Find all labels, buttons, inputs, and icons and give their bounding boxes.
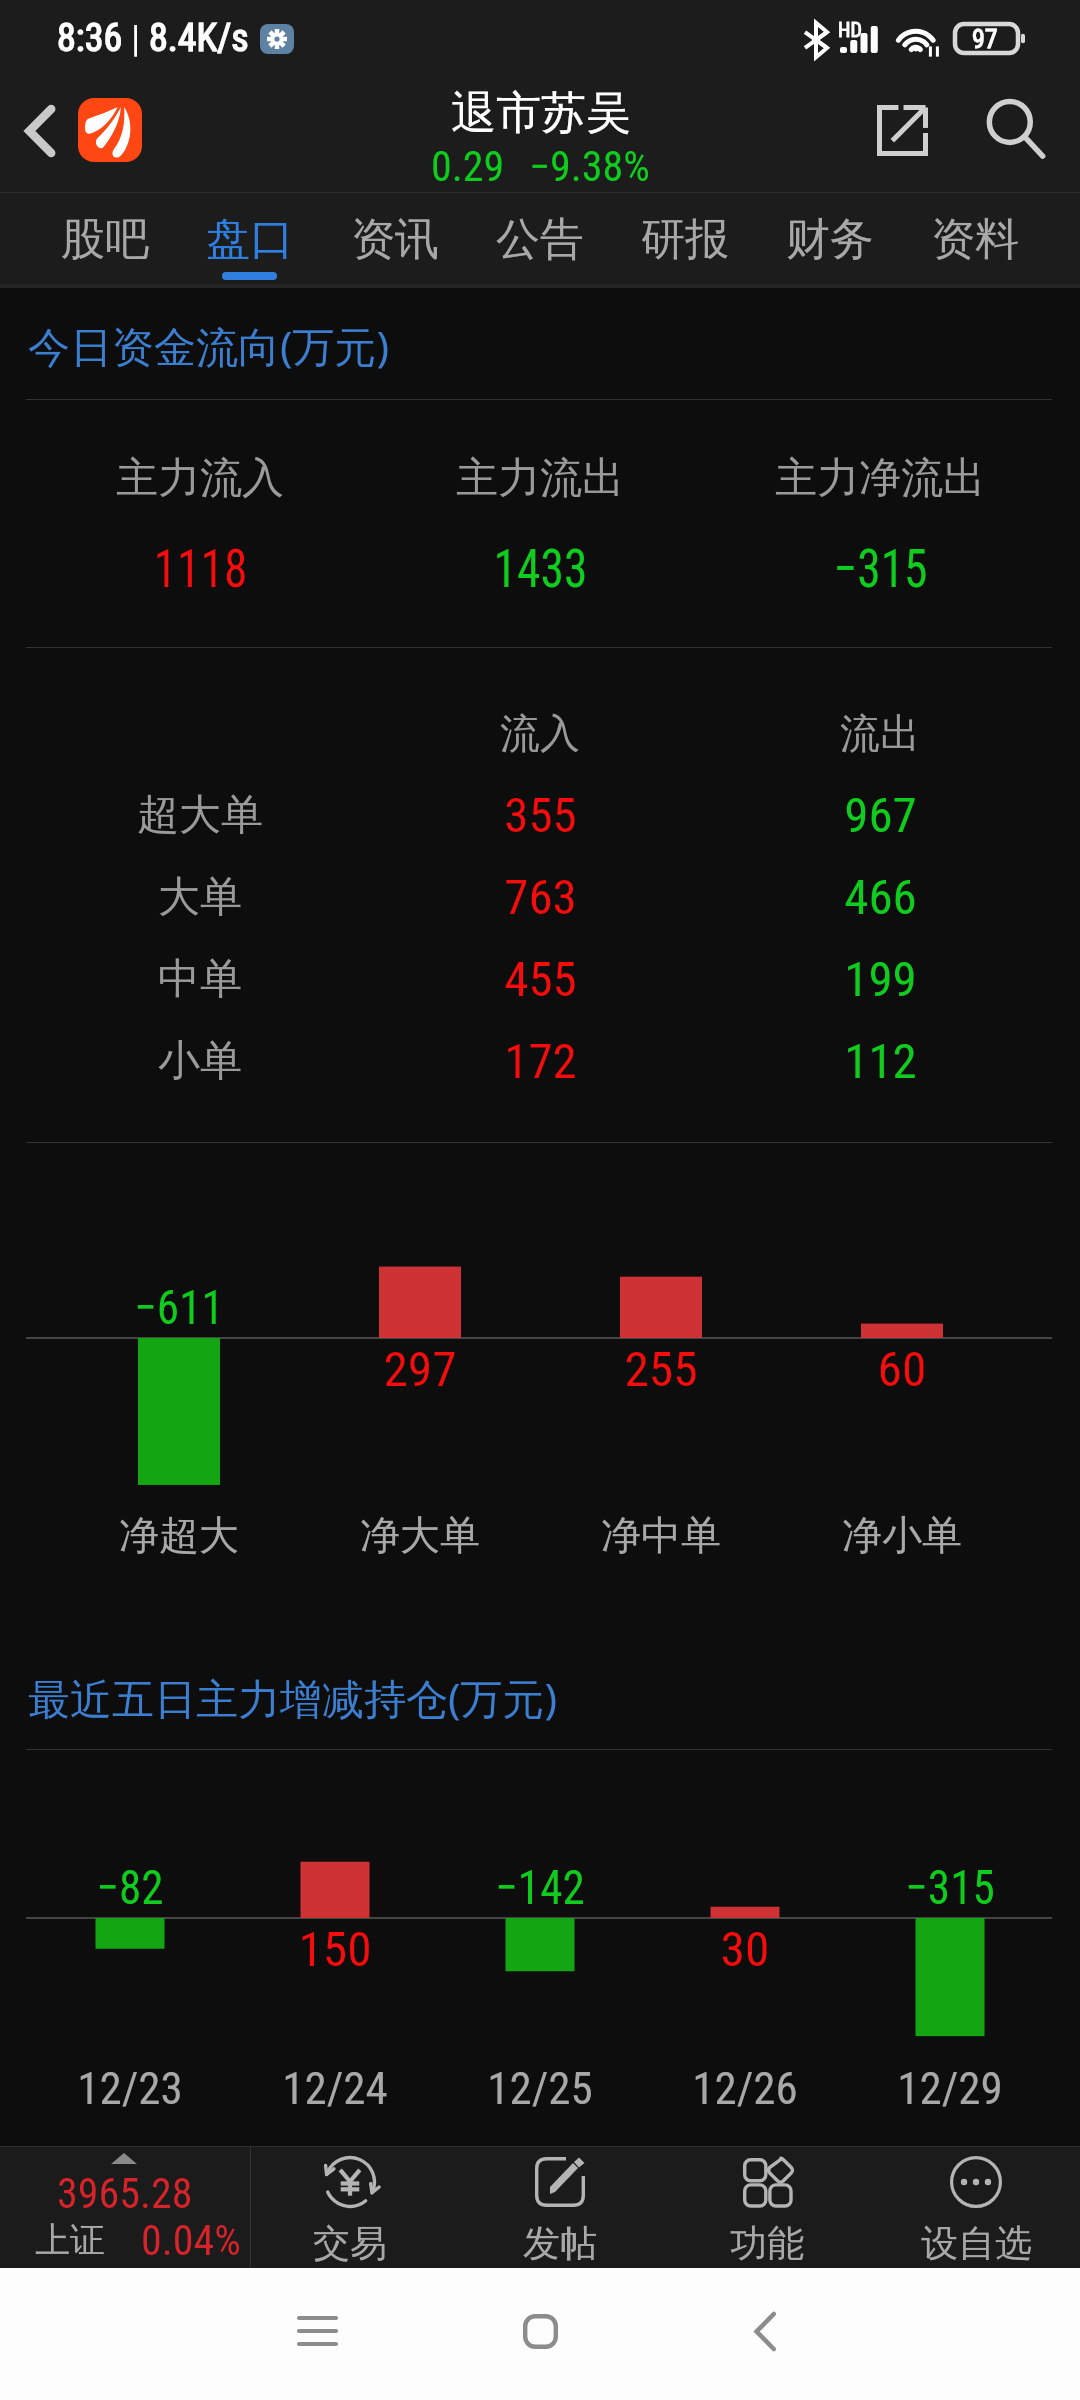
staticText: 8:36 xyxy=(57,16,123,61)
staticText: 199 xyxy=(844,951,917,1008)
staticText: 今日资金流向(万元) xyxy=(28,317,390,374)
staticText: 资料 xyxy=(931,212,1019,267)
staticText: 主力流入 xyxy=(116,452,284,505)
button[interactable]: 3965.28 xyxy=(0,2146,250,2268)
staticText: 112 xyxy=(844,1033,917,1090)
staticText: 超大单 xyxy=(137,789,263,842)
staticText: 中单 xyxy=(158,953,242,1006)
staticText: 盘口 xyxy=(206,212,294,267)
staticText: 退市苏吴 xyxy=(451,85,631,142)
staticText: 12/25 xyxy=(487,2062,593,2115)
staticText: 3965.28 xyxy=(57,2169,193,2218)
staticText: 12/23 xyxy=(77,2062,183,2115)
staticText: 30 xyxy=(720,1921,770,1977)
button[interactable]: 财务 xyxy=(757,192,902,284)
staticText: 财务 xyxy=(786,212,874,267)
button[interactable]: 设自选 xyxy=(876,2146,1076,2268)
staticText: 流出 xyxy=(840,708,920,758)
staticText: −9.38% xyxy=(529,142,650,191)
button[interactable]: 资料 xyxy=(902,192,1047,284)
button[interactable]: 股吧 xyxy=(33,192,177,284)
staticText: 小单 xyxy=(158,1035,242,1088)
button[interactable]: 退市苏吴 xyxy=(0,80,1080,192)
button[interactable]: Share xyxy=(856,80,948,180)
staticText: 466 xyxy=(844,869,917,926)
staticText: 967 xyxy=(844,787,917,844)
staticText: 355 xyxy=(504,787,577,844)
button[interactable]: Back xyxy=(0,84,84,188)
button[interactable]: Back xyxy=(690,2265,840,2397)
staticText: 功能 xyxy=(730,2220,804,2267)
button[interactable]: 公告 xyxy=(467,192,612,284)
staticText: HD xyxy=(838,18,862,41)
staticText: 最近五日主力增减持仓(万元) xyxy=(28,1669,558,1726)
staticText: 150 xyxy=(298,1921,372,1977)
button[interactable]: 研报 xyxy=(612,192,757,284)
staticText: 研报 xyxy=(641,212,729,267)
staticText: −611 xyxy=(134,1279,224,1335)
button[interactable]: Home xyxy=(465,2265,615,2397)
staticText: 上证 xyxy=(35,2218,105,2262)
staticText: 12/29 xyxy=(897,2062,1003,2115)
staticText: 发帖 xyxy=(523,2220,597,2267)
button[interactable]: 盘口 xyxy=(177,192,322,284)
staticText: 0.29 xyxy=(431,142,505,191)
staticText: 172 xyxy=(504,1033,577,1090)
staticText: −82 xyxy=(96,1859,164,1915)
staticText: 455 xyxy=(504,951,577,1008)
button[interactable]: 资讯 xyxy=(322,192,467,284)
staticText: 净小单 xyxy=(842,1510,962,1560)
staticText: −315 xyxy=(905,1859,995,1915)
staticText: 交易 xyxy=(313,2220,387,2267)
staticText: 297 xyxy=(383,1341,457,1397)
staticText: 1118 xyxy=(153,537,248,600)
staticText: 0.04% xyxy=(141,2216,241,2264)
staticText: 流入 xyxy=(500,708,580,758)
staticText: 8.4K/s xyxy=(149,16,249,61)
button[interactable]: App logo xyxy=(78,98,142,162)
staticText: 97 xyxy=(972,24,998,54)
staticText: 763 xyxy=(504,869,577,926)
button[interactable]: 发帖 xyxy=(460,2146,660,2268)
staticText: 净中单 xyxy=(601,1510,721,1560)
staticText: 12/24 xyxy=(282,2062,388,2115)
staticText: 设自选 xyxy=(921,2220,1032,2267)
staticText: 大单 xyxy=(158,871,242,924)
staticText: 主力流出 xyxy=(456,452,624,505)
staticText: 255 xyxy=(624,1341,698,1397)
staticText: −142 xyxy=(495,1859,585,1915)
staticText: 60 xyxy=(877,1341,927,1397)
staticText: 净大单 xyxy=(360,1510,480,1560)
staticText: 资讯 xyxy=(351,212,439,267)
staticText: −315 xyxy=(833,537,928,600)
button[interactable]: Recents xyxy=(242,2265,392,2397)
staticText: 1433 xyxy=(493,537,588,600)
staticText: 公告 xyxy=(496,212,584,267)
staticText: 主力净流出 xyxy=(775,452,985,505)
staticText: 12/26 xyxy=(692,2062,798,2115)
staticText: | xyxy=(123,18,149,60)
staticText: 股吧 xyxy=(61,212,149,267)
staticText: 净超大 xyxy=(119,1510,239,1560)
button[interactable]: 交易 xyxy=(250,2146,450,2268)
button[interactable]: 功能 xyxy=(667,2146,867,2268)
button[interactable]: Search xyxy=(970,80,1062,180)
